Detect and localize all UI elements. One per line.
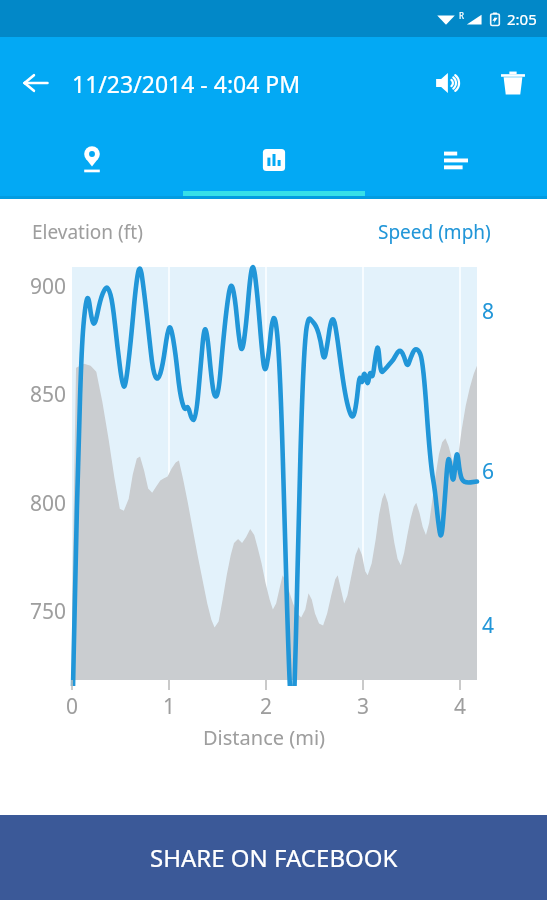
staticText: 1 (154, 692, 184, 721)
staticText: 900 (18, 272, 66, 301)
button[interactable]: Charts (183, 129, 365, 191)
staticText: Distance (mi) (203, 724, 326, 751)
button[interactable]: Details (365, 129, 547, 191)
staticText: Speed (mph) (378, 219, 491, 245)
staticText: 3 (348, 692, 378, 721)
button[interactable]: SHARE ON FACEBOOK (0, 815, 547, 900)
staticText: SHARE ON FACEBOOK (150, 841, 398, 874)
button[interactable]: Volume (419, 37, 479, 129)
staticText: 800 (18, 489, 66, 518)
staticText: 4 (482, 611, 495, 640)
staticText: 750 (18, 597, 66, 626)
staticText: 6 (482, 457, 495, 486)
button[interactable]: Delete (479, 37, 547, 129)
staticText: 2 (251, 692, 281, 721)
button[interactable]: Back (0, 37, 72, 129)
staticText: 11/23/2014 - 4:04 PM (72, 68, 301, 99)
staticText: 0 (57, 692, 87, 721)
staticText: R (459, 10, 464, 21)
staticText: 2:05 (507, 9, 537, 29)
staticText: 8 (482, 297, 495, 326)
staticText: Elevation (ft) (32, 219, 143, 245)
staticText: 850 (18, 380, 66, 409)
button[interactable]: Map (0, 129, 183, 191)
staticText: 4 (445, 692, 475, 721)
